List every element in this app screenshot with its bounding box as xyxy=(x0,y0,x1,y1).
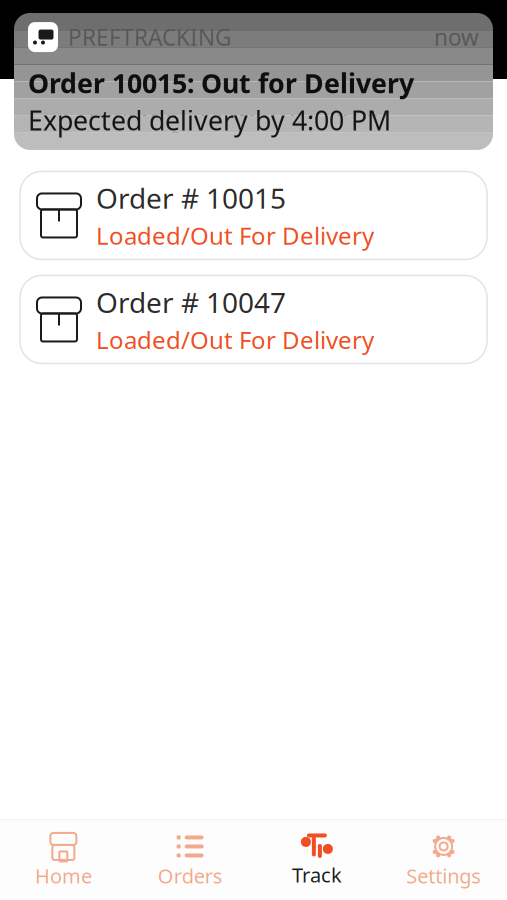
staticText: PREFTRACKING xyxy=(68,22,232,52)
button[interactable]: Order # 10047 xyxy=(20,275,487,364)
staticText: Order # 10015 xyxy=(96,179,286,217)
button[interactable]: Settings xyxy=(380,827,507,894)
button[interactable]: Track xyxy=(253,828,380,893)
staticText: Home xyxy=(35,862,92,889)
button[interactable]: Orders xyxy=(127,827,254,894)
button[interactable]: PREFTRACKING xyxy=(14,13,493,150)
staticText: Loaded/Out For Delivery xyxy=(96,324,374,356)
staticText: Expected delivery by 4:00 PM xyxy=(28,102,391,138)
staticText: Order 10015: Out for Delivery xyxy=(28,65,414,100)
button[interactable]: Order # 10015 xyxy=(20,171,487,259)
staticText: Settings xyxy=(406,862,481,889)
staticText: Tuesday, March 10, 2020 xyxy=(84,99,388,134)
staticText: Loaded/Out For Delivery xyxy=(96,220,374,251)
staticText: Order # 10047 xyxy=(96,283,286,321)
button[interactable]: Home xyxy=(0,827,127,894)
staticText: Orders xyxy=(158,862,223,889)
staticText: Track xyxy=(292,861,342,888)
staticText: now xyxy=(434,22,479,52)
